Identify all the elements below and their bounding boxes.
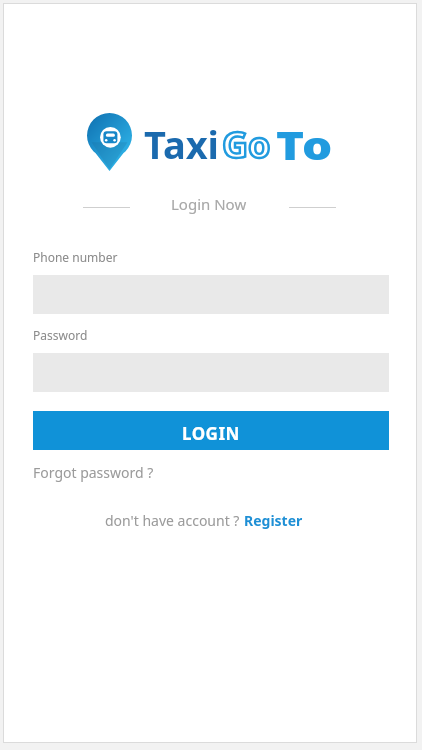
staticText: Forgot password ? (33, 463, 154, 482)
staticText: Login Now (171, 194, 247, 214)
staticText: Register (244, 511, 303, 530)
button[interactable]: LOGIN (33, 411, 389, 450)
staticText: Go (222, 120, 271, 169)
staticText: To (276, 118, 335, 171)
staticText: don't have account ? (105, 511, 244, 530)
staticText: Password (33, 327, 88, 343)
staticText: LOGIN (182, 422, 240, 445)
button[interactable]: Forgot password ? (33, 463, 154, 482)
staticText: Taxi (144, 118, 219, 170)
button[interactable]: Register (244, 511, 303, 530)
staticText: Phone number (33, 249, 118, 265)
